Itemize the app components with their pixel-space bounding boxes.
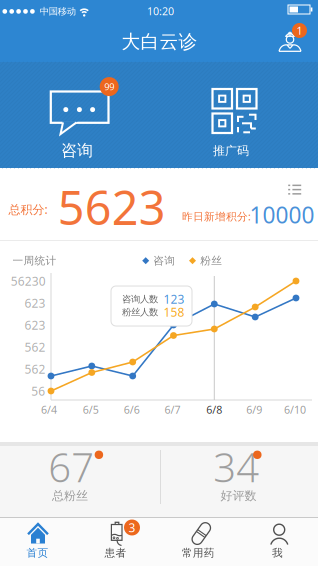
staticText: 6/10 (284, 403, 306, 417)
staticText: 623 (24, 295, 45, 311)
button[interactable]: 34 (159, 446, 318, 517)
staticText: 623 (24, 317, 45, 333)
staticText: 昨日新增积分: (182, 209, 251, 223)
staticText: 咨询 (61, 140, 93, 160)
staticText: 中国移动 (40, 6, 76, 17)
staticText: 咨询人数 (122, 293, 158, 305)
button[interactable]: 我 (238, 518, 318, 566)
staticText: 6/8 (206, 403, 222, 417)
staticText: 好评数 (220, 488, 256, 503)
staticText: 推广码 (213, 143, 249, 158)
staticText: 562 (24, 361, 45, 377)
staticText: 34 (213, 440, 259, 493)
staticText: 6/7 (164, 403, 180, 417)
staticText: 总粉丝 (52, 488, 88, 503)
staticText: 咨询 (153, 254, 175, 267)
staticText: 1 (296, 23, 302, 38)
staticText: 6/9 (246, 403, 262, 417)
staticText: 粉丝 (200, 254, 222, 267)
button[interactable]: 推广码 (159, 76, 318, 164)
staticText: 首页 (26, 546, 48, 559)
button[interactable]: 99 (0, 76, 159, 164)
staticText: 10:20 (147, 4, 174, 18)
staticText: 67 (48, 440, 94, 493)
staticText: 562 (24, 339, 45, 355)
button[interactable]: 3 (79, 518, 159, 566)
staticText: 总积分: (8, 201, 47, 217)
staticText: 6/5 (83, 403, 99, 417)
staticText: 158 (163, 304, 184, 320)
staticText: 6/6 (124, 403, 140, 417)
staticText: 10000 (249, 199, 314, 230)
staticText: 患者 (104, 546, 126, 559)
staticText: 我 (272, 546, 283, 559)
button[interactable]: 67 (0, 446, 159, 517)
staticText: 3 (128, 519, 135, 535)
staticText: 123 (163, 291, 184, 307)
staticText: 6/4 (41, 403, 57, 417)
staticText: 大白云诊 (121, 30, 197, 53)
staticText: 56230 (11, 273, 46, 289)
staticText: 粉丝人数 (122, 306, 158, 318)
staticText: 99 (104, 80, 114, 93)
button[interactable]: 积分明细 (282, 179, 306, 199)
staticText: 一周统计 (13, 254, 57, 267)
button[interactable]: 常用药 (159, 518, 238, 566)
button[interactable]: 我的资料 (276, 24, 307, 56)
staticText: 常用药 (182, 546, 215, 559)
staticText: 56 (31, 383, 45, 399)
staticText: 5623 (58, 176, 166, 238)
button[interactable]: 首页 (0, 518, 79, 566)
